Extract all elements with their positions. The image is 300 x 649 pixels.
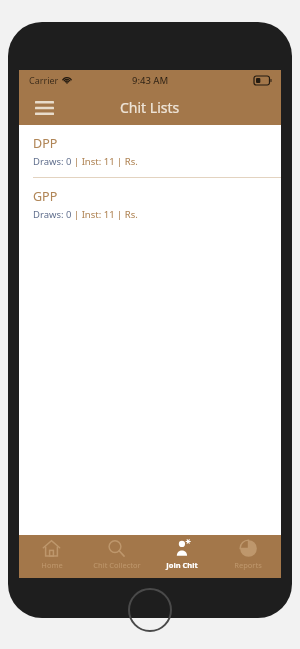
staticText: Carrier [29, 74, 59, 86]
button[interactable]: DPP [19, 125, 281, 177]
staticText: Home [41, 560, 63, 570]
staticText: Chit Collector [93, 560, 141, 570]
staticText: Draws: 0 | Inst: 11 | Rs. [33, 208, 138, 221]
staticText: Reports [234, 560, 262, 570]
staticText: Draws: 0 | Inst: 11 | Rs. [33, 155, 138, 168]
staticText: DPP [33, 135, 58, 152]
button[interactable]: GPP [19, 178, 281, 230]
staticText: 9:43 AM [132, 74, 169, 87]
staticText: GPP [33, 188, 58, 205]
button[interactable]: Reports [215, 535, 281, 578]
staticText: Chit Lists [120, 98, 180, 117]
button[interactable]: Join Chit [149, 535, 215, 578]
button[interactable]: Home [19, 535, 84, 578]
button[interactable]: Chit Collector [84, 535, 149, 578]
button[interactable]: Open navigation menu [29, 93, 59, 123]
staticText: Join Chit [166, 560, 198, 570]
